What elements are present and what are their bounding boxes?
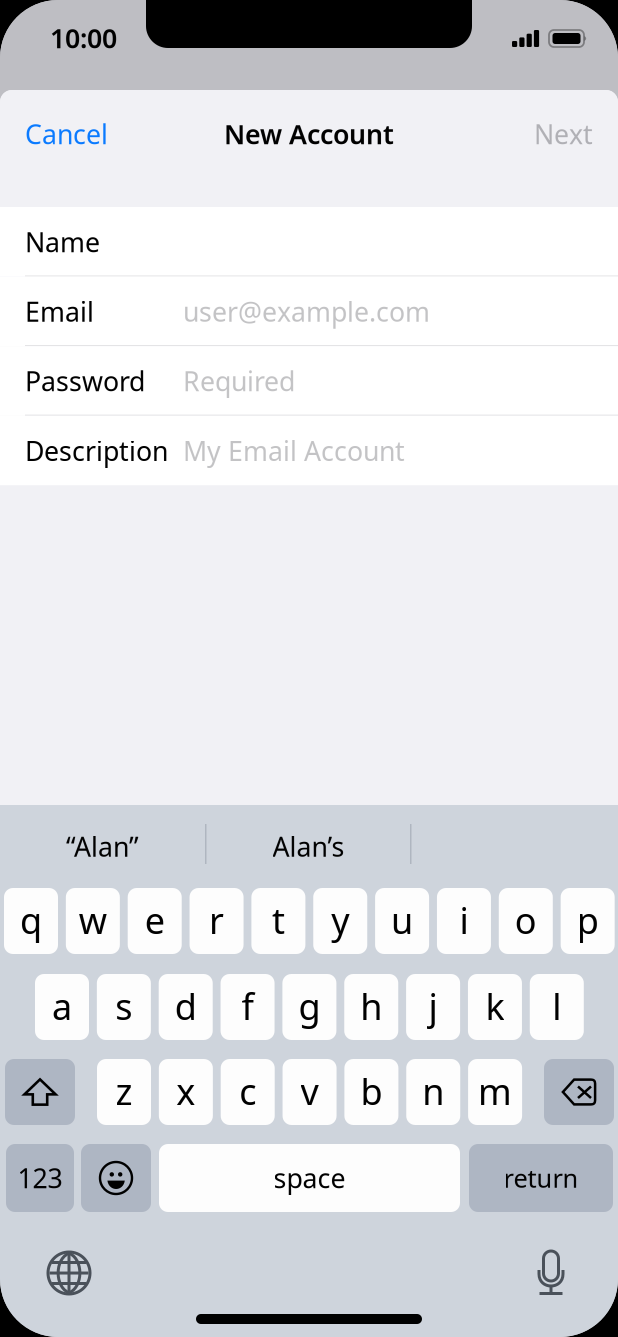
staticText: Next — [534, 116, 593, 152]
button[interactable]: Next keyboard — [36, 1242, 102, 1304]
button[interactable]: b — [344, 1059, 398, 1125]
staticText: a — [52, 982, 72, 1030]
staticText: Cancel — [25, 116, 108, 152]
staticText: t — [272, 896, 285, 944]
button[interactable]: h — [344, 974, 398, 1040]
button[interactable]: Dictate — [518, 1242, 584, 1304]
staticText: space — [273, 1160, 345, 1196]
button[interactable]: Email — [0, 277, 618, 346]
button[interactable]: w — [66, 888, 120, 954]
button[interactable]: y — [313, 888, 367, 954]
staticText: Email — [25, 294, 94, 329]
button[interactable]: Numbers — [6, 1144, 74, 1212]
button[interactable]: t — [251, 888, 305, 954]
staticText: e — [145, 896, 165, 944]
staticText: q — [20, 896, 42, 944]
button[interactable]: q — [4, 888, 58, 954]
button[interactable]: p — [561, 888, 615, 954]
staticText: o — [515, 896, 537, 944]
button[interactable]: j — [406, 974, 460, 1040]
button[interactable]: n — [406, 1059, 460, 1125]
button[interactable]: x — [159, 1059, 213, 1125]
staticText: s — [115, 982, 132, 1030]
staticText: c — [239, 1067, 256, 1115]
staticText: d — [175, 982, 197, 1030]
button[interactable]: l — [530, 974, 584, 1040]
staticText: u — [391, 896, 413, 944]
button[interactable]: return — [469, 1144, 613, 1212]
button[interactable]: Shift — [5, 1059, 75, 1125]
staticText: Required — [183, 363, 295, 399]
staticText: k — [485, 982, 504, 1030]
staticText: 123 — [17, 1160, 62, 1196]
button[interactable]: Cancel — [0, 90, 155, 178]
staticText: r — [209, 896, 224, 944]
button[interactable]: v — [283, 1059, 337, 1125]
button[interactable]: c — [221, 1059, 275, 1125]
button[interactable]: Password — [0, 346, 618, 416]
button[interactable]: Name — [0, 207, 618, 277]
staticText: n — [422, 1067, 444, 1115]
staticText: user@example.com — [183, 294, 430, 329]
button[interactable]: d — [159, 974, 213, 1040]
staticText: p — [577, 896, 599, 944]
button[interactable]: e — [128, 888, 182, 954]
staticText: v — [301, 1067, 319, 1115]
button[interactable]: o — [499, 888, 553, 954]
button[interactable]: i — [437, 888, 491, 954]
staticText: h — [360, 982, 382, 1030]
button[interactable]: Emoji — [81, 1144, 151, 1212]
staticText: y — [331, 896, 349, 944]
button[interactable]: u — [375, 888, 429, 954]
staticText: 10:00 — [50, 20, 117, 56]
staticText: z — [115, 1067, 132, 1115]
staticText: Description — [25, 433, 168, 468]
staticText: return — [503, 1161, 578, 1195]
button[interactable]: Delete — [544, 1059, 614, 1125]
staticText: b — [360, 1067, 382, 1115]
button[interactable]: a — [35, 974, 89, 1040]
button[interactable]: Next — [463, 90, 618, 178]
staticText: New Account — [224, 116, 394, 152]
button[interactable]: g — [282, 974, 336, 1040]
staticText: l — [552, 982, 561, 1030]
staticText: My Email Account — [183, 433, 405, 468]
staticText: Password — [25, 363, 145, 399]
button[interactable]: r — [190, 888, 244, 954]
button[interactable]: m — [468, 1059, 522, 1125]
button[interactable]: space — [159, 1144, 460, 1212]
staticText: f — [242, 982, 254, 1030]
button[interactable]: f — [221, 974, 275, 1040]
staticText: x — [176, 1067, 195, 1115]
button[interactable]: Alan’s — [206, 805, 411, 888]
staticText: i — [459, 896, 468, 944]
staticText: Alan’s — [272, 829, 344, 864]
staticText: “Alan” — [66, 829, 139, 864]
button[interactable]: s — [97, 974, 151, 1040]
staticText: m — [478, 1067, 512, 1115]
button[interactable]: “Alan” — [0, 805, 205, 888]
staticText: j — [429, 982, 438, 1030]
staticText: w — [79, 896, 107, 944]
staticText: g — [298, 982, 320, 1030]
button[interactable]: Description — [0, 416, 618, 485]
staticText: Name — [25, 224, 100, 259]
button[interactable]: z — [97, 1059, 151, 1125]
button[interactable]: k — [468, 974, 522, 1040]
